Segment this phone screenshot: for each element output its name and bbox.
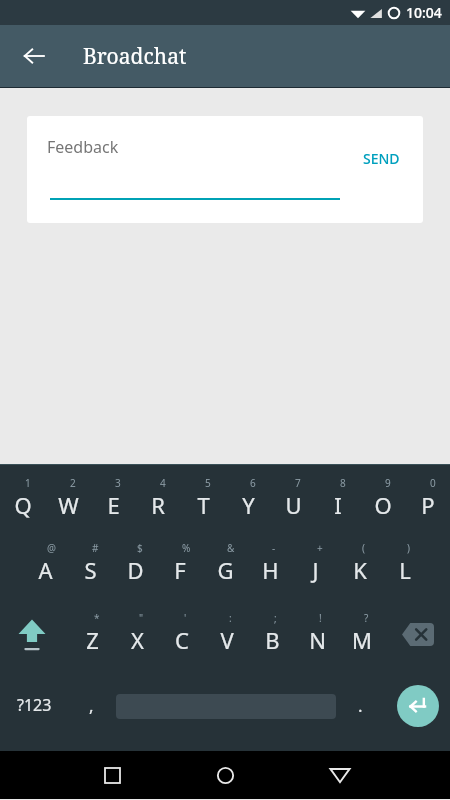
- button[interactable]: 0: [406, 470, 450, 528]
- staticText: @: [47, 541, 56, 555]
- staticText: S: [84, 555, 97, 585]
- button[interactable]: @: [23, 535, 67, 593]
- staticText: 8: [340, 476, 346, 490]
- staticText: SEND: [363, 149, 400, 168]
- staticText: A: [38, 555, 53, 585]
- button[interactable]: Home: [195, 751, 255, 799]
- staticText: G: [217, 555, 234, 585]
- staticText: L: [399, 555, 411, 585]
- button[interactable]: %: [158, 535, 202, 593]
- button[interactable]: (: [338, 535, 382, 593]
- button[interactable]: 9: [361, 470, 405, 528]
- staticText: %: [182, 541, 191, 555]
- button[interactable]: Enter: [397, 685, 439, 727]
- staticText: H: [262, 555, 279, 585]
- button[interactable]: $: [113, 535, 157, 593]
- staticText: 10:04: [406, 3, 442, 22]
- button[interactable]: !: [295, 605, 339, 663]
- staticText: U: [285, 490, 302, 520]
- staticText: N: [309, 625, 326, 655]
- button[interactable]: +: [293, 535, 337, 593]
- staticText: X: [131, 625, 144, 655]
- staticText: *: [94, 611, 100, 625]
- button[interactable]: 3: [91, 470, 135, 528]
- staticText: Z: [86, 625, 99, 655]
- staticText: 2: [70, 476, 76, 490]
- staticText: !: [319, 611, 322, 625]
- button[interactable]: ?: [340, 605, 384, 663]
- button[interactable]: ,: [71, 682, 111, 728]
- staticText: C: [175, 625, 189, 655]
- button[interactable]: Shift: [5, 605, 59, 663]
- button[interactable]: ;: [250, 605, 294, 663]
- button[interactable]: 8: [316, 470, 360, 528]
- button[interactable]: :: [205, 605, 249, 663]
- button[interactable]: 1: [1, 470, 45, 528]
- staticText: F: [174, 555, 186, 585]
- staticText: ?123: [17, 694, 52, 716]
- staticText: T: [197, 490, 210, 520]
- staticText: Feedback: [47, 136, 119, 158]
- staticText: Y: [242, 490, 255, 520]
- staticText: +: [317, 541, 323, 555]
- staticText: ': [184, 611, 187, 625]
- button[interactable]: -: [248, 535, 292, 593]
- staticText: I: [334, 490, 342, 520]
- staticText: D: [127, 555, 144, 585]
- staticText: ,: [89, 694, 94, 717]
- staticText: 5: [205, 476, 211, 490]
- staticText: $: [137, 541, 143, 555]
- staticText: 7: [295, 476, 301, 490]
- button[interactable]: ?123: [10, 682, 58, 728]
- button[interactable]: ): [383, 535, 427, 593]
- button[interactable]: ': [160, 605, 204, 663]
- button[interactable]: Backspace: [392, 605, 444, 663]
- staticText: R: [151, 490, 165, 520]
- button[interactable]: &: [203, 535, 247, 593]
- staticText: B: [265, 625, 280, 655]
- staticText: P: [421, 490, 435, 520]
- staticText: ;: [274, 611, 277, 625]
- button[interactable]: Recent apps: [82, 751, 142, 799]
- staticText: ": [139, 611, 144, 625]
- staticText: &: [227, 541, 235, 555]
- staticText: 3: [115, 476, 121, 490]
- staticText: J: [312, 555, 319, 585]
- staticText: ): [407, 541, 410, 555]
- button[interactable]: ": [115, 605, 159, 663]
- staticText: M: [352, 625, 372, 655]
- button[interactable]: Back: [14, 36, 54, 76]
- staticText: 9: [385, 476, 391, 490]
- button[interactable]: .: [342, 682, 378, 728]
- staticText: W: [58, 490, 79, 520]
- staticText: E: [107, 490, 120, 520]
- staticText: (: [362, 541, 365, 555]
- button[interactable]: *: [70, 605, 114, 663]
- staticText: Q: [14, 490, 32, 520]
- staticText: -: [272, 541, 276, 555]
- staticText: 6: [250, 476, 256, 490]
- button[interactable]: 4: [136, 470, 180, 528]
- staticText: #: [92, 541, 99, 555]
- staticText: ?: [364, 611, 369, 625]
- button[interactable]: SEND: [360, 146, 403, 171]
- staticText: V: [220, 625, 234, 655]
- staticText: K: [353, 555, 367, 585]
- staticText: :: [229, 611, 232, 625]
- staticText: 1: [25, 476, 31, 490]
- staticText: O: [374, 490, 392, 520]
- button[interactable]: 2: [46, 470, 90, 528]
- staticText: Broadchat: [83, 42, 187, 71]
- button[interactable]: 7: [271, 470, 315, 528]
- staticText: 4: [160, 476, 166, 490]
- button[interactable]: #: [68, 535, 112, 593]
- button[interactable]: 5: [181, 470, 225, 528]
- staticText: 0: [430, 476, 436, 490]
- button[interactable]: 6: [226, 470, 270, 528]
- staticText: .: [358, 694, 363, 717]
- button[interactable]: Hide keyboard: [310, 751, 370, 799]
